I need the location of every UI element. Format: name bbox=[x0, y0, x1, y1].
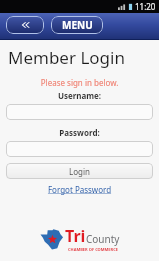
button[interactable]: MENU bbox=[51, 16, 103, 34]
staticText: MENU bbox=[62, 18, 93, 32]
button[interactable]: Back bbox=[6, 16, 44, 34]
staticText: Tri bbox=[65, 225, 86, 247]
staticText: County bbox=[86, 232, 120, 246]
staticText: Username: bbox=[0, 90, 159, 101]
staticText: 11:20 bbox=[135, 1, 156, 12]
staticText: Password: bbox=[0, 127, 159, 138]
staticText: Please sign in below. bbox=[0, 77, 159, 88]
button[interactable] bbox=[6, 141, 153, 157]
staticText: Login bbox=[69, 166, 90, 177]
button[interactable]: Login bbox=[6, 163, 153, 179]
button[interactable]: Forgot Password bbox=[0, 184, 159, 195]
staticText: CHAMBER OF COMMERCE bbox=[68, 247, 118, 252]
button[interactable] bbox=[6, 104, 153, 120]
staticText: Member Login bbox=[8, 46, 125, 69]
